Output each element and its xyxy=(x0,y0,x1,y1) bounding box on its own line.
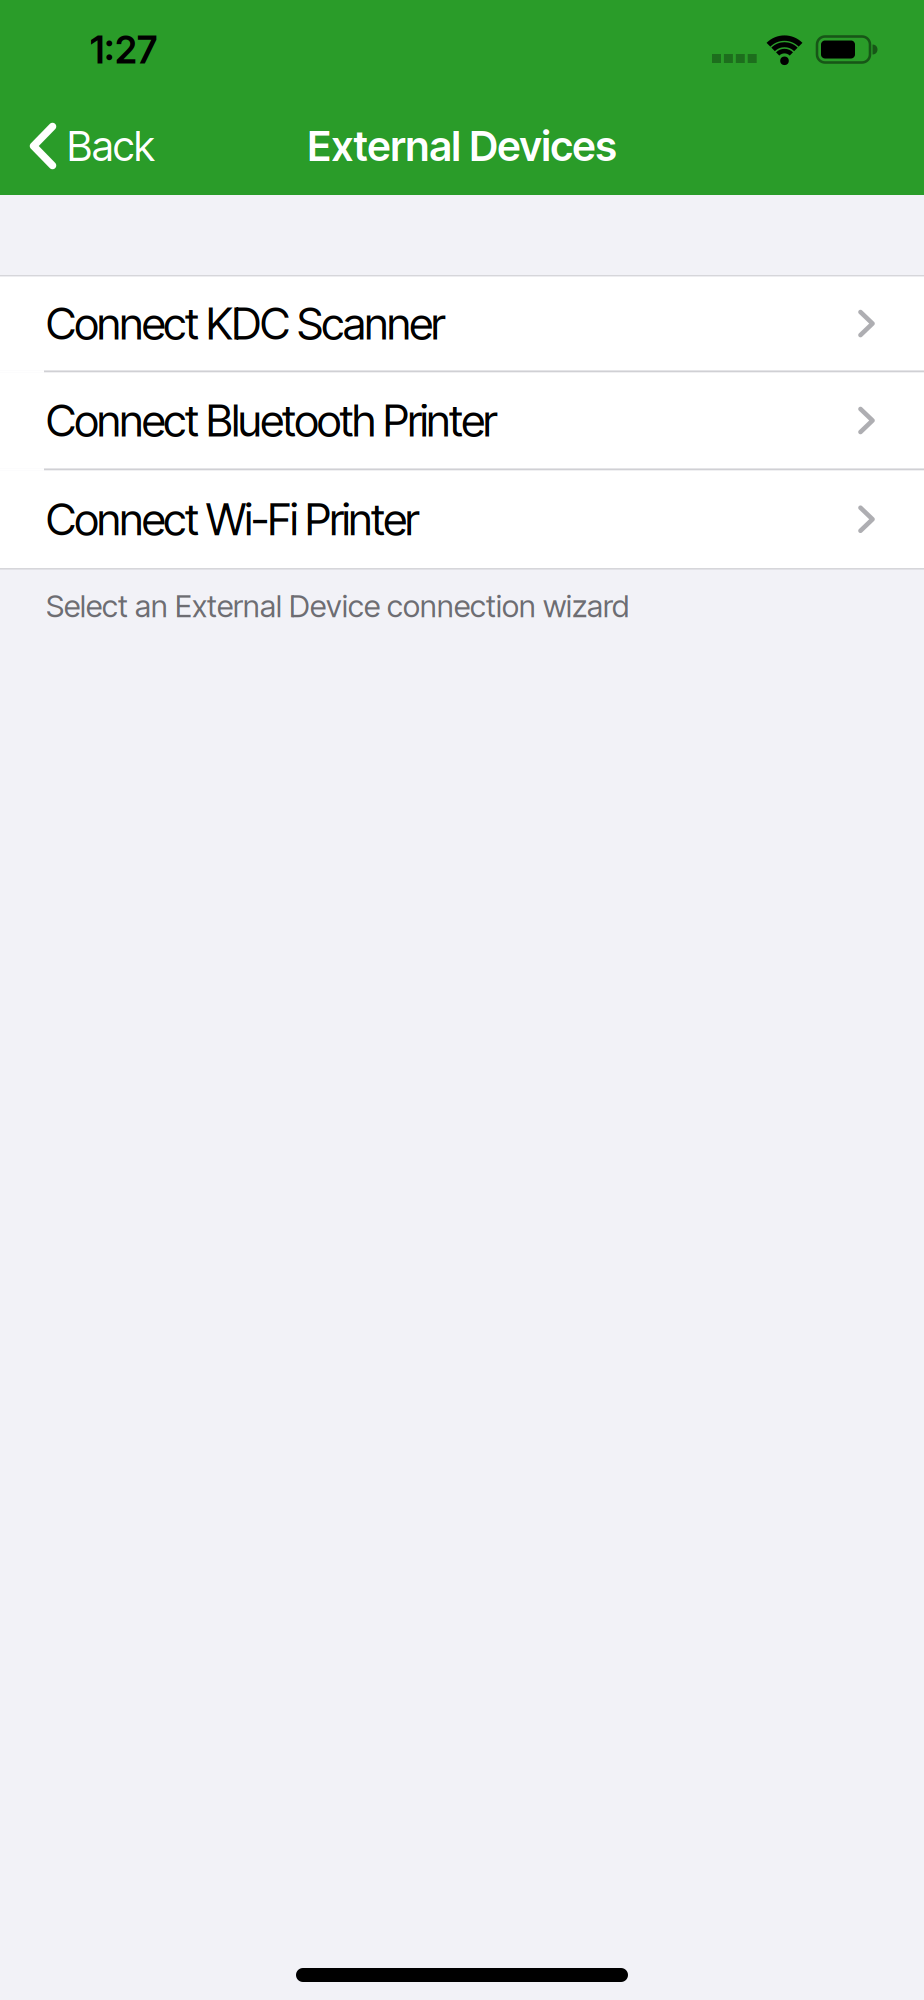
staticText: External Devices xyxy=(307,122,616,170)
staticText: 1:27 xyxy=(90,28,157,72)
staticText: Connect KDC Scanner xyxy=(46,298,445,349)
staticText: Back xyxy=(67,122,155,170)
staticText: Select an External Device connection wiz… xyxy=(46,588,629,624)
button[interactable]: Connect Wi-Fi Printer xyxy=(0,470,924,568)
button[interactable]: Back xyxy=(0,117,155,166)
button[interactable]: Connect KDC Scanner xyxy=(0,277,924,370)
staticText: Connect Bluetooth Printer xyxy=(46,394,497,446)
button[interactable]: Connect Bluetooth Printer xyxy=(0,372,924,468)
staticText: Connect Wi-Fi Printer xyxy=(46,493,419,545)
